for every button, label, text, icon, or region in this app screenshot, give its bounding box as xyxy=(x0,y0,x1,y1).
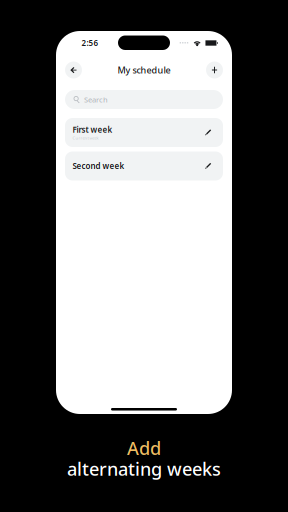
staticText: alternating weeks xyxy=(67,456,221,481)
staticText: First week xyxy=(72,124,112,135)
button[interactable]: Add schedule xyxy=(206,61,223,78)
staticText: My schedule xyxy=(117,64,170,76)
button[interactable]: First week xyxy=(65,118,223,147)
button[interactable]: Second week xyxy=(65,151,223,180)
staticText: Second week xyxy=(72,161,124,171)
staticText: Search xyxy=(84,94,108,105)
button[interactable]: Search xyxy=(65,90,223,109)
staticText: 2:56 xyxy=(81,38,98,48)
button[interactable]: Back xyxy=(65,61,82,78)
staticText: Current week xyxy=(72,135,98,141)
staticText: Add xyxy=(127,436,161,460)
